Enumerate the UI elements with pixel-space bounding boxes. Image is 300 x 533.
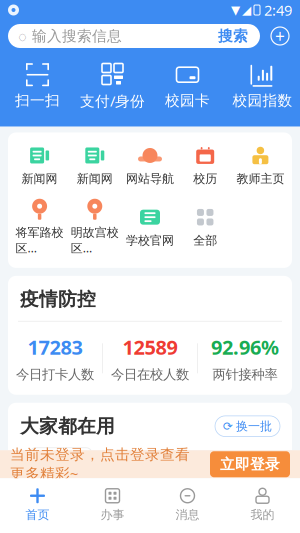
button[interactable]: 明故宫校区… bbox=[67, 198, 122, 256]
button[interactable]: ⟳ bbox=[215, 416, 280, 437]
staticText: 支付/身份 bbox=[80, 91, 145, 110]
staticText: 网站导航 bbox=[126, 171, 174, 186]
staticText: ◌ bbox=[18, 26, 27, 46]
button[interactable]: 全部 bbox=[178, 206, 233, 248]
staticText: 首页 bbox=[25, 507, 49, 522]
button[interactable]: 搜索 bbox=[218, 27, 260, 45]
staticText: 将军路校区… bbox=[16, 225, 64, 256]
button[interactable]: 教师主页 bbox=[233, 144, 288, 186]
button[interactable]: 校历 bbox=[30, 448, 92, 496]
staticText: 校园卡 bbox=[165, 92, 210, 110]
staticText: 消息 bbox=[175, 507, 199, 522]
staticText: 换一批 bbox=[236, 419, 272, 434]
staticText: 2:49 bbox=[264, 0, 292, 20]
staticText: 校园指数 bbox=[232, 92, 292, 110]
staticText: ▼ bbox=[231, 3, 240, 17]
staticText: 12589 bbox=[122, 334, 177, 360]
button[interactable]: 办事 bbox=[75, 482, 150, 527]
staticText: 新闻网 bbox=[22, 171, 58, 186]
staticText: 两针接种率 bbox=[212, 366, 277, 383]
staticText: 大家都在用 bbox=[20, 415, 115, 438]
staticText: 学校官网 bbox=[126, 233, 174, 248]
button[interactable]: 校历 bbox=[178, 144, 233, 186]
staticText: 立即登录 bbox=[220, 455, 280, 473]
staticText: 新闻网 bbox=[77, 171, 113, 186]
staticText: 明故宫校区… bbox=[71, 225, 119, 256]
button[interactable]: 立即登录 bbox=[210, 451, 290, 477]
staticText: ◢ bbox=[242, 3, 251, 17]
button[interactable]: 校园指数 bbox=[225, 61, 300, 112]
staticText: 扫一扫 bbox=[15, 92, 60, 110]
staticText: 今日打卡人数 bbox=[16, 366, 94, 383]
staticText: 疫情防控 bbox=[20, 288, 96, 311]
button[interactable]: 将军路校区… bbox=[12, 198, 67, 256]
staticText: 92.96% bbox=[211, 334, 279, 360]
button[interactable]: 首页 bbox=[0, 482, 75, 527]
staticText: 17283 bbox=[27, 334, 82, 360]
staticText: 校历 bbox=[193, 171, 217, 186]
button[interactable]: 我的 bbox=[225, 482, 300, 527]
button[interactable]: 新闻网 bbox=[67, 144, 122, 186]
staticText: 搜索 bbox=[218, 27, 248, 45]
staticText: 我的 bbox=[250, 507, 274, 522]
staticText: 输入搜索信息 bbox=[32, 27, 122, 45]
staticText: 当前未登录，点击登录查看更多精彩~ bbox=[10, 445, 190, 483]
staticText: ⟳ bbox=[223, 419, 233, 433]
staticText: 今日在校人数 bbox=[111, 366, 189, 383]
button[interactable]: 支付/身份 bbox=[75, 60, 150, 112]
button[interactable]: 网站导航 bbox=[122, 144, 178, 186]
button[interactable]: 学校官网 bbox=[122, 206, 178, 248]
button[interactable]: 扫一扫 bbox=[0, 61, 75, 112]
staticText: + bbox=[275, 24, 285, 47]
button[interactable]: 新闻网 bbox=[12, 144, 67, 186]
staticText: 全部 bbox=[193, 233, 217, 248]
staticText: 教师主页 bbox=[236, 171, 284, 186]
staticText: 校历 bbox=[48, 475, 74, 492]
staticText: 办事 bbox=[100, 507, 124, 522]
button[interactable]: 添加 bbox=[268, 24, 292, 48]
button[interactable]: 消息 bbox=[150, 482, 225, 527]
button[interactable]: 校园卡 bbox=[150, 61, 225, 112]
